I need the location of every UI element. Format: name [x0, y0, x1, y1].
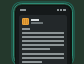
other: App icon [22, 18, 29, 25]
button[interactable]: App icon [19, 15, 67, 64]
